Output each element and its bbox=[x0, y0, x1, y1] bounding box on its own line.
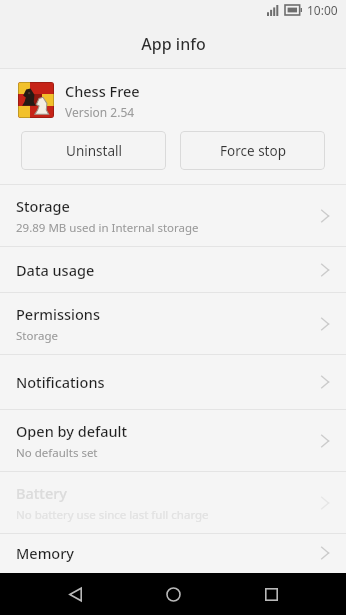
staticText: Storage bbox=[16, 328, 58, 344]
button[interactable]: Memory bbox=[0, 534, 346, 564]
staticText: Memory bbox=[16, 543, 75, 563]
staticText: Version 2.54 bbox=[65, 104, 135, 120]
button[interactable]: Permissions bbox=[0, 293, 346, 354]
staticText: Notifications bbox=[16, 372, 105, 392]
staticText: No defaults set bbox=[16, 445, 98, 461]
staticText: Battery bbox=[16, 483, 67, 503]
button[interactable]: Back bbox=[52, 573, 98, 615]
staticText: No battery use since last full charge bbox=[16, 507, 209, 523]
button[interactable]: Force stop bbox=[180, 131, 325, 170]
button[interactable]: Battery bbox=[0, 472, 346, 533]
staticText: 10:00 bbox=[307, 2, 338, 18]
button[interactable]: Recent apps bbox=[248, 573, 294, 615]
button[interactable]: Uninstall bbox=[21, 131, 166, 170]
button[interactable]: Data usage bbox=[0, 247, 346, 292]
button[interactable]: Home bbox=[150, 573, 196, 615]
staticText: 29.89 MB used in Internal storage bbox=[16, 220, 199, 236]
staticText: Storage bbox=[16, 196, 70, 216]
staticText: Uninstall bbox=[66, 142, 122, 160]
staticText: Open by default bbox=[16, 421, 128, 441]
button[interactable]: Storage bbox=[0, 185, 346, 246]
staticText: Force stop bbox=[220, 142, 286, 160]
staticText: Data usage bbox=[16, 260, 95, 280]
staticText: Permissions bbox=[16, 304, 100, 324]
button[interactable]: Open by default bbox=[0, 410, 346, 471]
button[interactable]: Notifications bbox=[0, 355, 346, 409]
staticText: App info bbox=[141, 33, 206, 55]
staticText: Chess Free bbox=[65, 81, 140, 101]
